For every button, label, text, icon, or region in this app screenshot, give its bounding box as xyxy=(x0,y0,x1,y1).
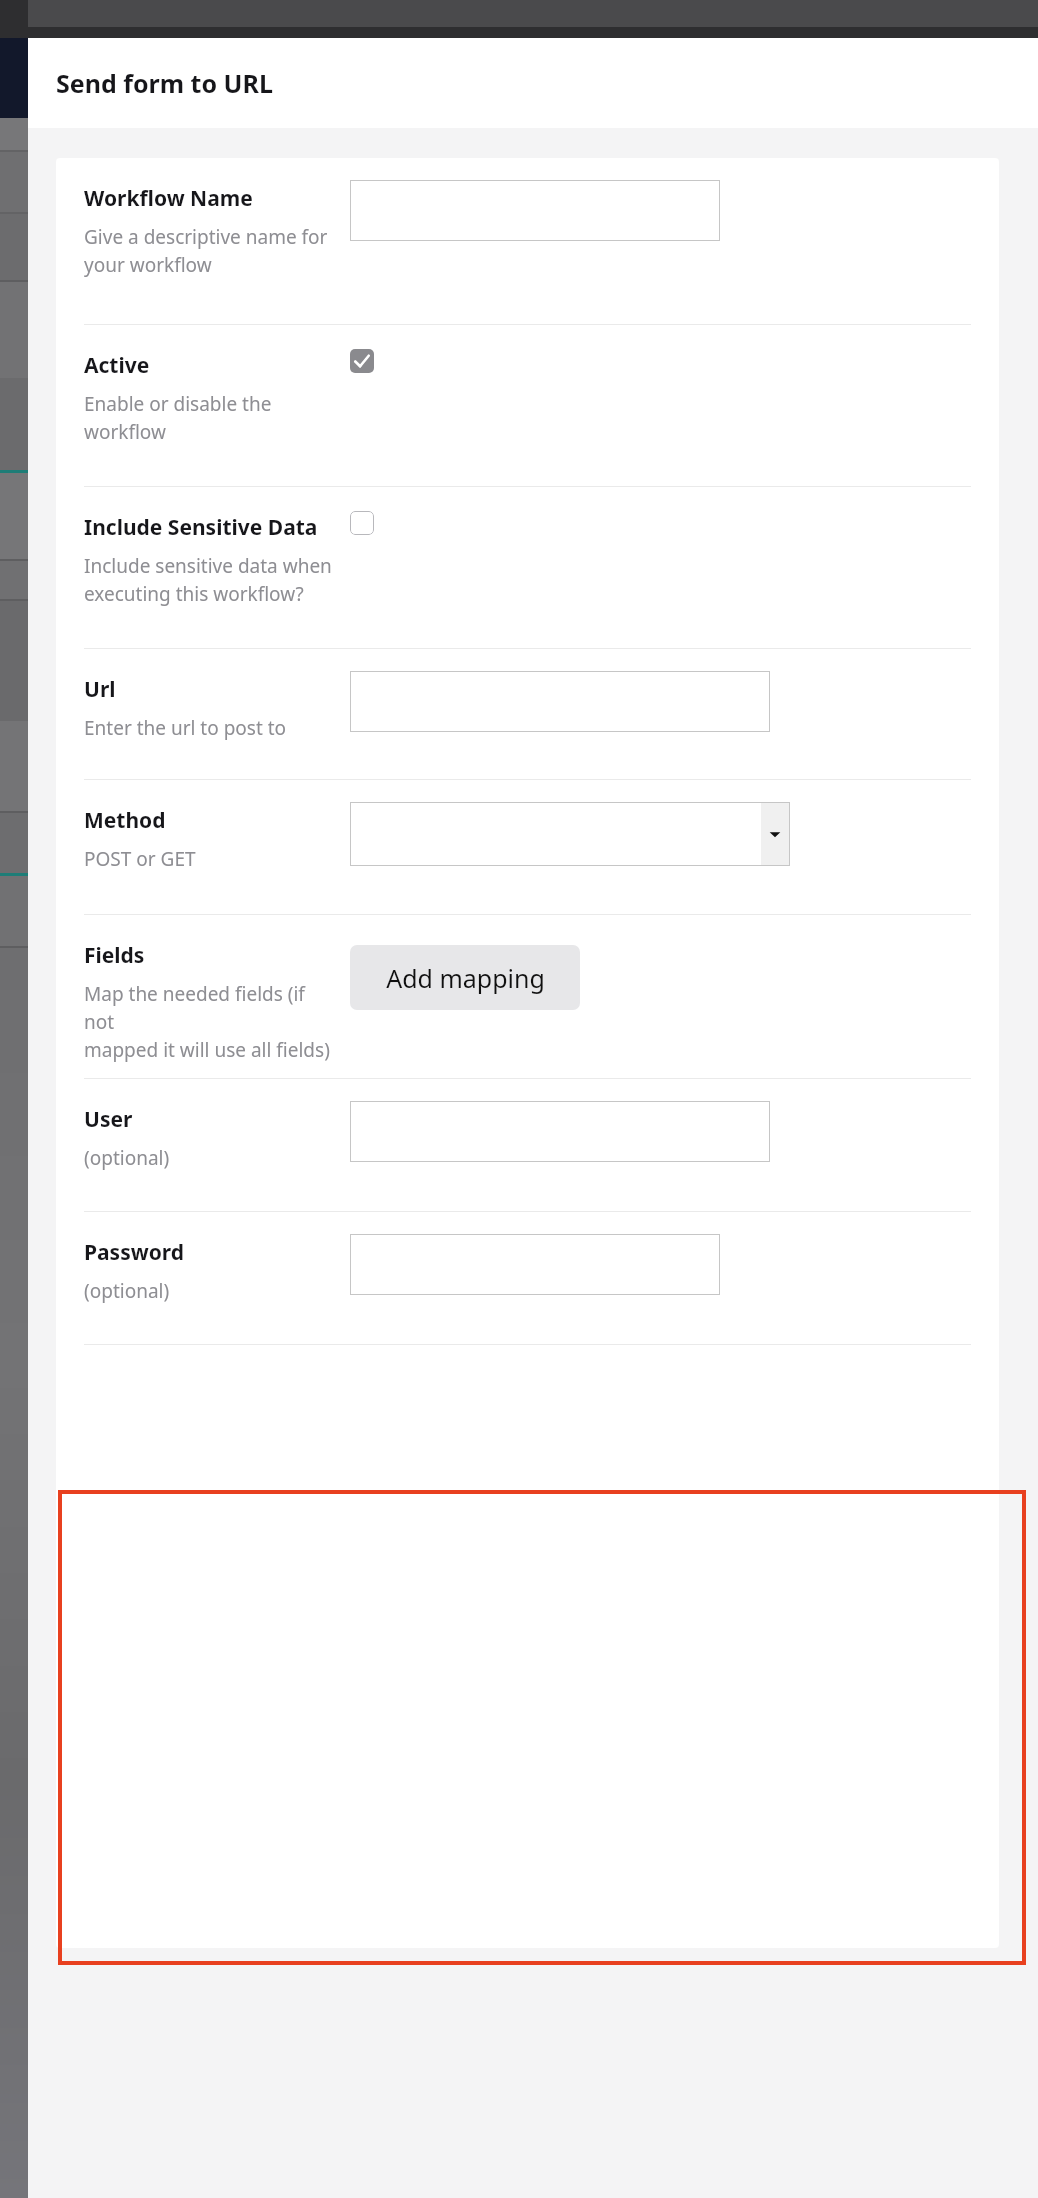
staticText: User xyxy=(84,1105,133,1134)
staticText: Method xyxy=(84,806,166,835)
button[interactable]: Text input xyxy=(350,1234,720,1295)
staticText: (optional) xyxy=(84,1145,170,1171)
button[interactable]: Text input xyxy=(350,1101,770,1162)
staticText: Enable or disable the workflow xyxy=(84,391,272,445)
staticText: POST or GET xyxy=(84,846,196,872)
button[interactable]: Unchecked xyxy=(350,511,374,535)
button[interactable]: Checked xyxy=(350,349,374,373)
button[interactable]: Add mapping xyxy=(350,945,580,1010)
staticText: Enter the url to post to xyxy=(84,715,287,741)
staticText: Include Sensitive Data xyxy=(84,513,318,542)
staticText: (optional) xyxy=(84,1278,170,1304)
staticText: Fields xyxy=(84,941,145,970)
staticText: Url xyxy=(84,675,116,704)
staticText: Password xyxy=(84,1238,185,1267)
staticText: Send form to URL xyxy=(56,66,273,100)
button[interactable]: Text input xyxy=(350,180,720,241)
staticText: Give a descriptive name for your workflo… xyxy=(84,224,328,278)
button[interactable]: Method selector xyxy=(350,802,790,866)
staticText: Map the needed fields (if not mapped it … xyxy=(84,981,334,1063)
staticText: Workflow Name xyxy=(84,184,253,213)
staticText: Include sensitive data when executing th… xyxy=(84,553,332,607)
button[interactable]: Text input xyxy=(350,671,770,732)
staticText: Active xyxy=(84,351,150,380)
staticText: Add mapping xyxy=(386,961,545,995)
